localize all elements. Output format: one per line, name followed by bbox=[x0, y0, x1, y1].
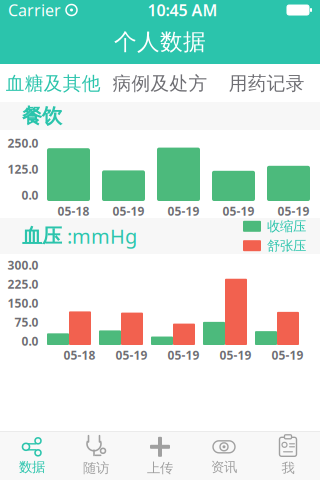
staticText: 0.0 bbox=[21, 333, 38, 349]
button[interactable]: 随访 bbox=[64, 432, 128, 480]
staticText: 资讯 bbox=[211, 459, 237, 475]
staticText: 150.0 bbox=[7, 295, 38, 311]
button[interactable]: 数据 bbox=[0, 432, 64, 480]
staticText: 250.0 bbox=[7, 135, 38, 151]
staticText: 05-19 bbox=[277, 203, 309, 219]
staticText: 我 bbox=[281, 460, 294, 476]
staticText: 10:45 AM bbox=[147, 0, 217, 21]
staticText: 0.0 bbox=[21, 187, 38, 203]
staticText: 随访 bbox=[83, 460, 109, 476]
staticText: 个人数据 bbox=[114, 28, 206, 56]
staticText: 血糖及其他 bbox=[6, 72, 101, 95]
staticText: 舒张压 bbox=[267, 237, 306, 254]
staticText: 75.0 bbox=[14, 314, 38, 330]
staticText: 05-19 bbox=[219, 347, 251, 363]
staticText: 用药记录 bbox=[229, 72, 305, 95]
staticText: 血压 bbox=[22, 224, 62, 248]
staticText: 05-18 bbox=[63, 347, 95, 363]
staticText: 05-19 bbox=[115, 347, 147, 363]
staticText: 300.0 bbox=[7, 257, 38, 273]
staticText: 125.0 bbox=[7, 161, 38, 177]
staticText: 05-19 bbox=[222, 203, 254, 219]
button[interactable]: 上传 bbox=[128, 432, 192, 480]
staticText: 05-18 bbox=[57, 203, 89, 219]
staticText: 05-19 bbox=[167, 203, 199, 219]
button[interactable]: 用药记录 bbox=[213, 64, 320, 102]
staticText: 收缩压 bbox=[267, 218, 306, 234]
staticText: 数据 bbox=[19, 459, 45, 475]
button[interactable]: 血糖及其他 bbox=[0, 64, 107, 102]
button[interactable]: 资讯 bbox=[192, 432, 256, 480]
staticText: :mmHg bbox=[62, 223, 137, 249]
staticText: 餐饮 bbox=[22, 104, 62, 128]
staticText: Carrier bbox=[8, 0, 61, 21]
staticText: 05-19 bbox=[271, 347, 303, 363]
staticText: 225.0 bbox=[7, 276, 38, 292]
staticText: 上传 bbox=[147, 460, 173, 476]
button[interactable]: 病例及处方 bbox=[107, 64, 213, 102]
staticText: 病例及处方 bbox=[112, 72, 207, 95]
button[interactable]: 我 bbox=[256, 432, 320, 480]
staticText: 05-19 bbox=[112, 203, 144, 219]
staticText: 05-19 bbox=[167, 347, 199, 363]
